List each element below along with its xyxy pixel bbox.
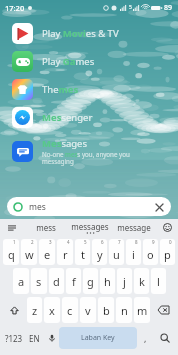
- staticText: t: [81, 247, 85, 262]
- staticText: r: [63, 247, 68, 262]
- staticText: s: [36, 274, 42, 289]
- button[interactable]: message: [112, 219, 156, 236]
- button[interactable]: Keyboard menu: [0, 219, 24, 236]
- staticText: 7: [118, 239, 121, 245]
- staticText: c: [67, 303, 73, 318]
- staticText: No-one mess you, anyone you messaging: [42, 150, 130, 166]
- staticText: 17:20: [5, 3, 25, 13]
- staticText: w: [25, 247, 34, 262]
- button[interactable]: 0: [160, 239, 175, 265]
- button[interactable]: Emoji: [156, 219, 178, 236]
- button[interactable]: Play Games: [0, 47, 178, 75]
- button[interactable]: 2: [21, 239, 37, 265]
- button[interactable]: 9: [143, 239, 158, 265]
- button[interactable]: Themes: [0, 75, 178, 103]
- staticText: 5: [129, 4, 132, 11]
- staticText: 89: [164, 3, 173, 13]
- staticText: m: [137, 303, 148, 318]
- staticText: d: [53, 274, 60, 289]
- button[interactable]: s: [31, 268, 47, 294]
- button[interactable]: x: [44, 297, 60, 323]
- button[interactable]: Backspace: [152, 297, 175, 323]
- staticText: h: [104, 274, 111, 289]
- staticText: z: [32, 303, 38, 318]
- button[interactable]: 3: [39, 239, 55, 265]
- staticText: Laban Key: [81, 333, 115, 343]
- button[interactable]: v: [80, 297, 96, 323]
- staticText: u: [113, 247, 120, 262]
- button[interactable]: h: [100, 268, 115, 294]
- staticText: Play Games: [42, 55, 95, 68]
- staticText: Messenger: [42, 111, 93, 124]
- staticText: 4: [67, 239, 70, 245]
- staticText: 0: [169, 239, 172, 245]
- button[interactable]: f: [66, 268, 81, 294]
- staticText: 2: [31, 239, 34, 245]
- button[interactable]: Search: [154, 326, 176, 350]
- staticText: k: [139, 274, 145, 289]
- staticText: 6: [101, 239, 104, 245]
- staticText: i: [132, 247, 135, 262]
- button[interactable]: Shift: [3, 297, 25, 323]
- staticText: q: [8, 247, 15, 262]
- button[interactable]: 5: [75, 239, 90, 265]
- staticText: 1: [13, 239, 16, 245]
- staticText: e: [44, 247, 51, 262]
- staticText: Messages: [42, 137, 88, 150]
- staticText: b: [103, 303, 110, 318]
- staticText: p: [164, 247, 171, 262]
- staticText: j: [123, 274, 126, 289]
- staticText: ?123: [5, 333, 23, 344]
- button[interactable]: 1: [3, 239, 19, 265]
- staticText: 3: [49, 239, 52, 245]
- staticText: g: [87, 274, 94, 289]
- staticText: v: [85, 303, 91, 318]
- button[interactable]: 6: [92, 239, 107, 265]
- button[interactable]: EN: [25, 326, 44, 350]
- staticText: ,: [144, 332, 147, 344]
- staticText: mes: [29, 201, 46, 213]
- staticText: 5: [84, 239, 87, 245]
- button[interactable]: ,: [137, 326, 154, 350]
- staticText: f: [72, 274, 76, 289]
- staticText: x: [49, 303, 55, 318]
- staticText: messages: [71, 221, 109, 232]
- staticText: message: [117, 222, 151, 233]
- button[interactable]: mes: [7, 197, 171, 216]
- button[interactable]: mess: [24, 219, 68, 236]
- button[interactable]: 4: [57, 239, 73, 265]
- button[interactable]: j: [117, 268, 132, 294]
- button[interactable]: Voice input: [44, 326, 59, 350]
- staticText: o: [147, 247, 154, 262]
- button[interactable]: b: [98, 297, 114, 323]
- button[interactable]: Clear: [153, 201, 165, 213]
- button[interactable]: m: [134, 297, 150, 323]
- button[interactable]: d: [49, 268, 64, 294]
- staticText: n: [121, 303, 128, 318]
- button[interactable]: n: [116, 297, 132, 323]
- button[interactable]: messages: [68, 219, 112, 236]
- button[interactable]: k: [134, 268, 149, 294]
- button[interactable]: 8: [126, 239, 141, 265]
- staticText: l: [157, 274, 160, 289]
- button[interactable]: 7: [109, 239, 124, 265]
- staticText: Play Movies & TV: [42, 27, 119, 40]
- staticText: y: [97, 247, 103, 262]
- staticText: mess: [36, 222, 56, 233]
- button[interactable]: Play Movies & TV: [0, 19, 178, 47]
- button[interactable]: a: [13, 268, 29, 294]
- staticText: Themes: [42, 83, 79, 96]
- staticText: a: [18, 274, 25, 289]
- button[interactable]: ?123: [2, 326, 25, 350]
- button[interactable]: c: [62, 297, 78, 323]
- staticText: EN: [29, 333, 40, 344]
- button[interactable]: Laban Key: [59, 327, 137, 349]
- button[interactable]: Messages: [0, 131, 178, 171]
- button[interactable]: g: [83, 268, 98, 294]
- button[interactable]: z: [27, 297, 42, 323]
- staticText: 9: [152, 239, 155, 245]
- button[interactable]: l: [151, 268, 166, 294]
- staticText: 8: [135, 239, 138, 245]
- button[interactable]: Messenger: [0, 103, 178, 131]
